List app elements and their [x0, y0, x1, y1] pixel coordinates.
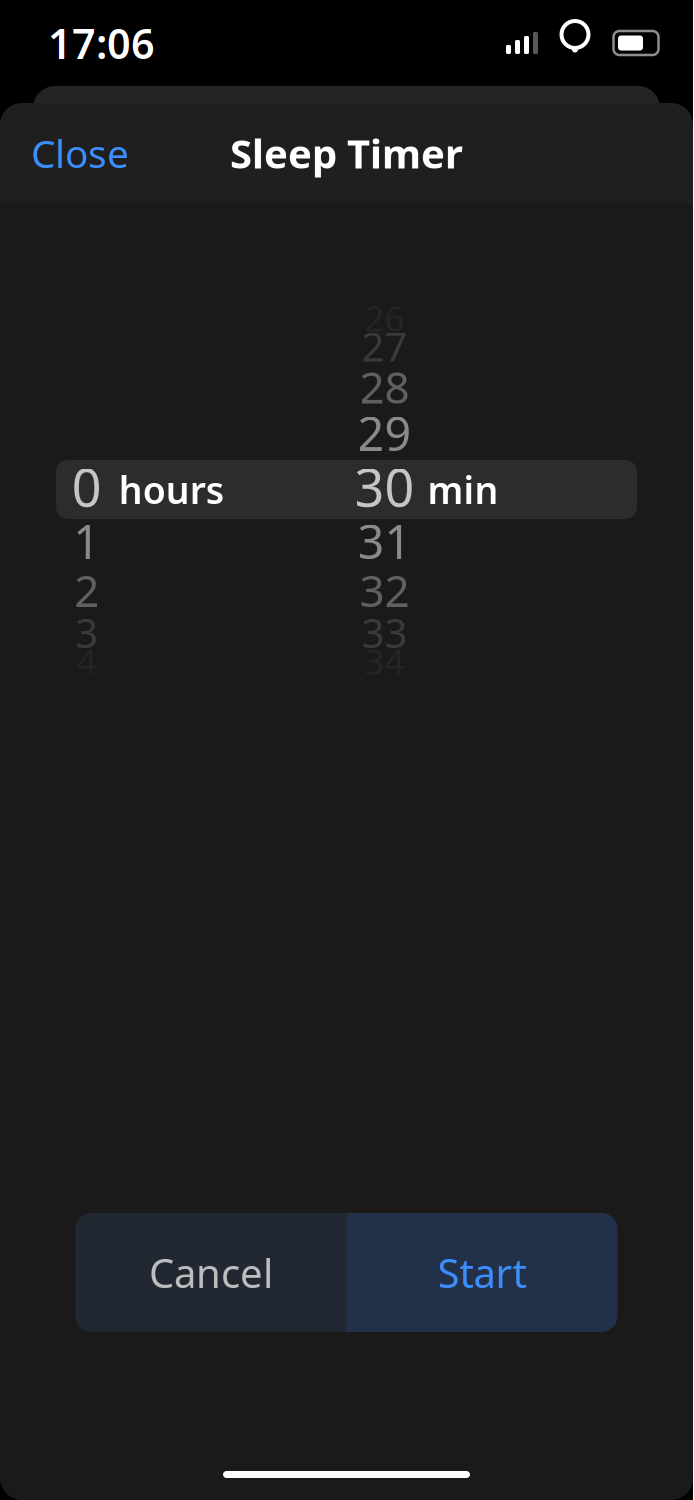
staticText: 1: [73, 510, 100, 572]
staticText: 31: [357, 510, 411, 572]
button[interactable]: Cancel: [75, 1213, 346, 1332]
staticText: 28: [359, 357, 409, 416]
staticText: 34: [364, 638, 404, 684]
staticText: Close: [31, 127, 129, 179]
staticText: Start: [437, 1246, 526, 1299]
staticText: Cancel: [149, 1246, 273, 1299]
staticText: 26: [364, 295, 404, 341]
button[interactable]: Start: [346, 1213, 617, 1332]
staticText: 27: [361, 319, 407, 372]
staticText: min: [427, 465, 498, 514]
staticText: 2: [74, 561, 99, 619]
staticText: 30: [354, 452, 414, 521]
staticText: [81, 402, 93, 464]
staticText: 4: [77, 638, 97, 684]
staticText: hours: [119, 465, 224, 514]
staticText: Sleep Timer: [230, 126, 463, 179]
button[interactable]: Close: [0, 103, 160, 203]
staticText: 33: [361, 606, 407, 659]
staticText: 29: [357, 402, 411, 464]
staticText: 3: [75, 606, 98, 659]
staticText: 32: [359, 561, 409, 619]
staticText: 0: [72, 452, 102, 521]
staticText: 17:06: [48, 16, 155, 70]
